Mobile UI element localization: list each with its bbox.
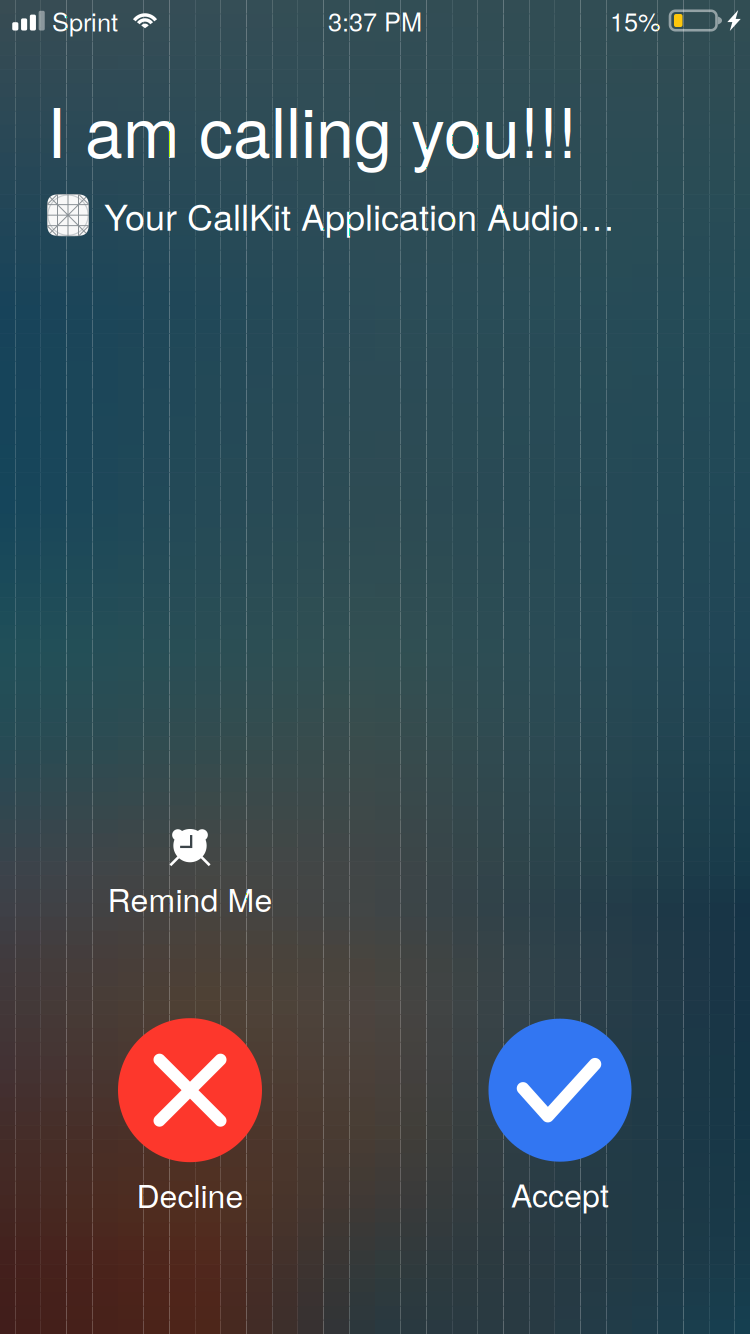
button[interactable]: Accept <box>470 1019 650 1216</box>
staticText: Accept <box>511 1171 609 1216</box>
button[interactable]: Decline <box>100 1018 280 1217</box>
staticText: Your CallKit Application Audio… <box>104 189 615 241</box>
staticText: 15% <box>610 2 661 39</box>
staticText: Remind Me <box>107 875 272 921</box>
staticText: Decline <box>136 1171 243 1217</box>
button[interactable]: Remind Me <box>100 824 280 921</box>
staticText: I am calling you!!! <box>47 80 577 177</box>
staticText: Sprint <box>52 2 118 39</box>
staticText: 3:37 PM <box>328 2 422 39</box>
